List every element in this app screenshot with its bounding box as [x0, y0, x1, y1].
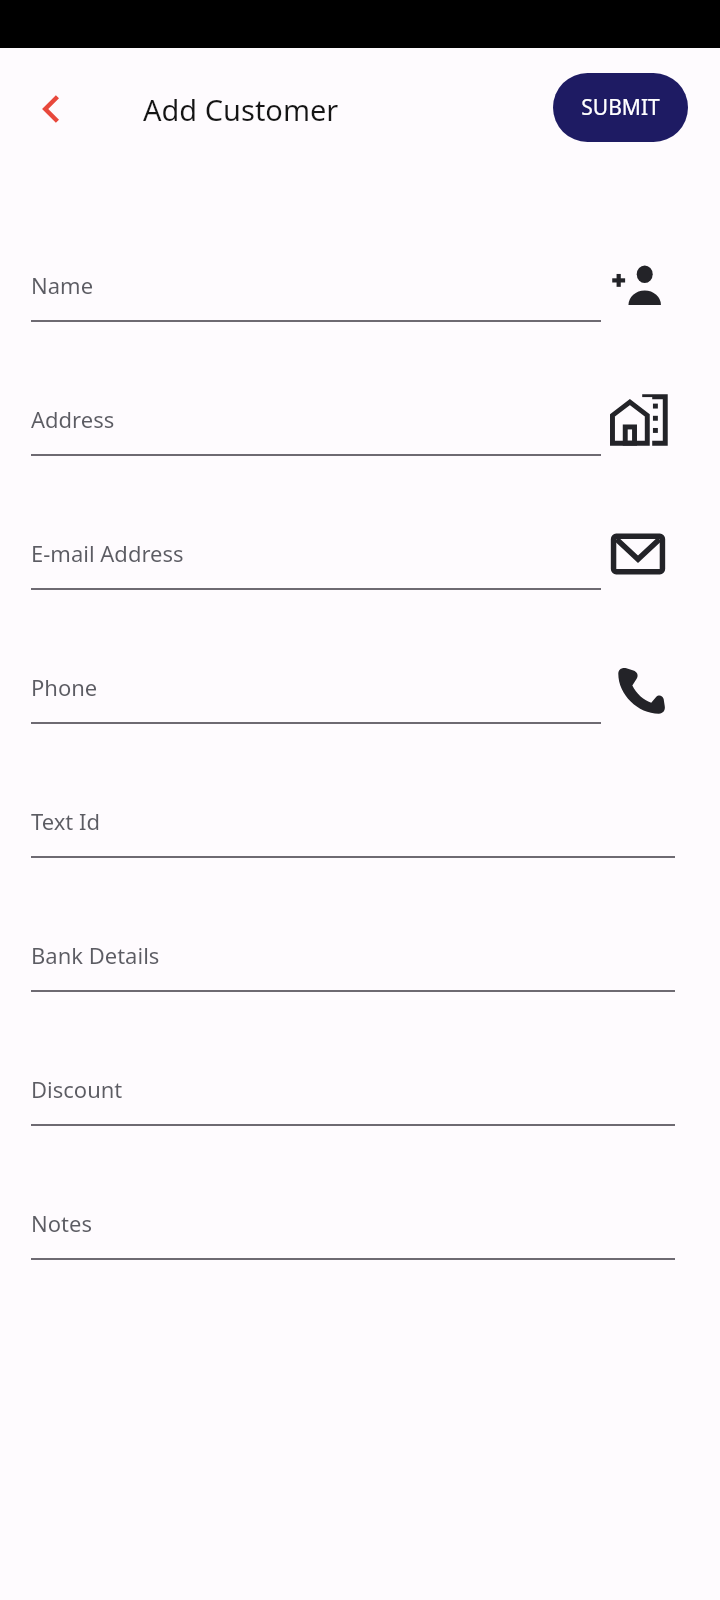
staticText: E-mail Address — [31, 538, 184, 568]
staticText: Phone — [31, 672, 98, 702]
button[interactable]: Discount — [0, 1038, 720, 1172]
button[interactable]: E-mail Address — [0, 502, 720, 636]
staticText: Notes — [31, 1208, 92, 1238]
button[interactable]: Address — [604, 386, 672, 454]
button[interactable]: Notes — [0, 1172, 720, 1306]
button[interactable]: Phone — [604, 654, 672, 722]
button[interactable]: SUBMIT — [553, 73, 688, 142]
button[interactable]: Bank Details — [0, 904, 720, 1038]
button[interactable]: Back — [18, 75, 86, 143]
button[interactable]: Text Id — [0, 770, 720, 904]
staticText: SUBMIT — [581, 93, 660, 122]
staticText: Name — [31, 270, 94, 300]
staticText: Text Id — [31, 806, 100, 836]
button[interactable]: Add person — [604, 252, 672, 320]
staticText: Discount — [31, 1074, 123, 1104]
button[interactable]: Name — [0, 234, 720, 368]
staticText: Add Customer — [143, 90, 339, 129]
staticText: Bank Details — [31, 940, 160, 970]
button[interactable]: E-mail address — [604, 520, 672, 588]
staticText: Address — [31, 404, 115, 434]
button[interactable]: Address — [0, 368, 720, 502]
button[interactable]: Phone — [0, 636, 720, 770]
